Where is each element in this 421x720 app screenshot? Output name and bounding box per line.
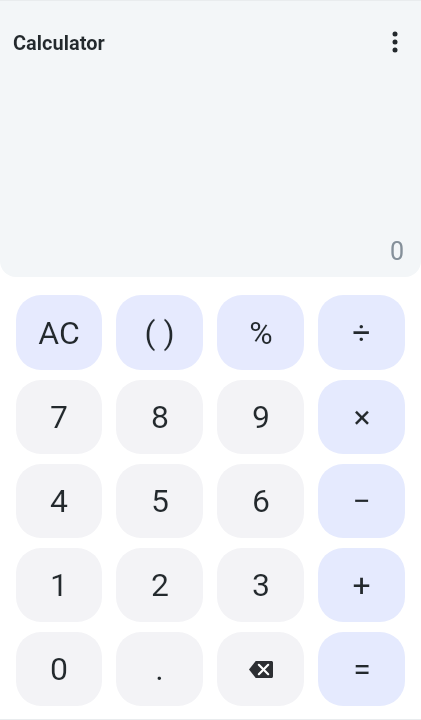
staticText: × — [353, 398, 371, 436]
staticText: 2 — [151, 566, 169, 604]
staticText: 0 — [50, 650, 68, 688]
button[interactable]: 8 — [116, 380, 203, 454]
button[interactable]: − — [318, 464, 405, 538]
button[interactable]: More options — [375, 22, 415, 62]
staticText: 0 — [390, 237, 405, 266]
staticText: Calculator — [13, 31, 105, 54]
button[interactable]: + — [318, 548, 405, 622]
staticText: − — [352, 482, 371, 520]
button[interactable]: % — [217, 295, 304, 370]
button[interactable]: 1 — [16, 548, 102, 622]
button[interactable]: . — [116, 632, 203, 706]
staticText: 3 — [252, 566, 270, 604]
staticText: % — [249, 314, 273, 352]
staticText: 5 — [151, 482, 169, 520]
button[interactable]: 5 — [116, 464, 203, 538]
button[interactable]: 6 — [217, 464, 304, 538]
staticText: 4 — [50, 482, 68, 520]
staticText: AC — [38, 314, 80, 352]
button[interactable]: 7 — [16, 380, 102, 454]
staticText: 7 — [50, 398, 68, 436]
button[interactable]: 0 — [16, 632, 102, 706]
staticText: 8 — [151, 398, 169, 436]
staticText: ( ) — [144, 314, 175, 352]
button[interactable]: ÷ — [318, 295, 405, 370]
button[interactable]: 4 — [16, 464, 102, 538]
button[interactable]: 2 — [116, 548, 203, 622]
button[interactable]: Backspace — [217, 632, 304, 706]
button[interactable]: AC — [16, 295, 102, 370]
staticText: 9 — [252, 398, 270, 436]
button[interactable]: 3 — [217, 548, 304, 622]
button[interactable]: 9 — [217, 380, 304, 454]
staticText: ÷ — [352, 314, 371, 352]
button[interactable]: = — [318, 632, 405, 706]
staticText: . — [155, 650, 164, 688]
button[interactable]: ( ) — [116, 295, 203, 370]
staticText: 1 — [50, 566, 68, 604]
staticText: + — [352, 566, 371, 604]
staticText: = — [353, 650, 371, 688]
staticText: 6 — [252, 482, 270, 520]
button[interactable]: × — [318, 380, 405, 454]
